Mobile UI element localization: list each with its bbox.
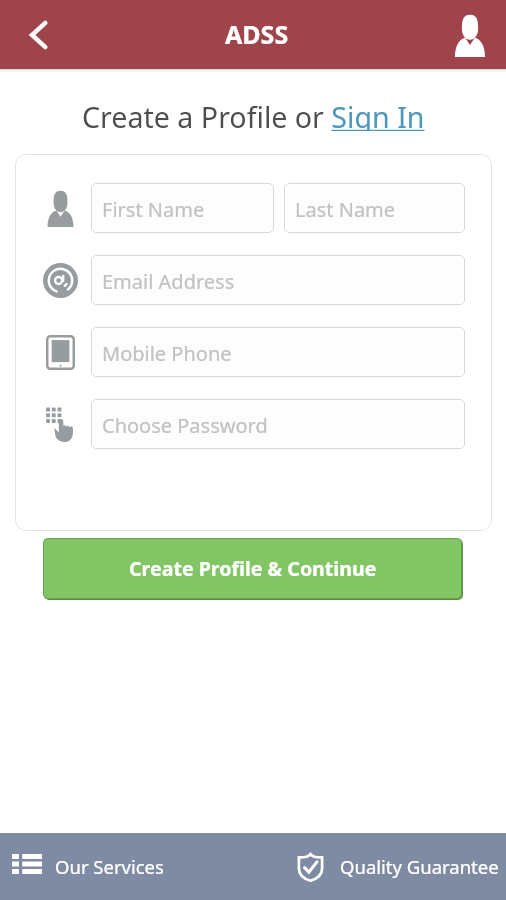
button[interactable]: Our Services <box>0 833 289 900</box>
staticText: Email Address <box>102 268 235 295</box>
staticText: ADSS <box>225 17 289 51</box>
button[interactable]: Quality Guarantee <box>289 833 506 900</box>
staticText: Create Profile & Continue <box>129 555 377 582</box>
button[interactable]: First Name <box>91 183 274 233</box>
staticText: Last Name <box>295 196 396 223</box>
staticText: Mobile Phone <box>102 340 232 367</box>
staticText: Choose Password <box>102 412 268 439</box>
button[interactable]: Email Address <box>91 255 465 305</box>
button[interactable]: Profile <box>442 7 498 63</box>
button[interactable]: Create Profile & Continue <box>43 538 462 599</box>
staticText: Quality Guarantee <box>340 854 499 879</box>
staticText: Our Services <box>55 854 164 879</box>
button[interactable]: Choose Password <box>91 399 465 449</box>
button[interactable]: Mobile Phone <box>91 327 465 377</box>
staticText: Create a Profile or Sign In <box>82 97 425 131</box>
button[interactable]: Back <box>10 7 66 63</box>
button[interactable]: Last Name <box>284 183 465 233</box>
staticText: First Name <box>102 196 205 223</box>
